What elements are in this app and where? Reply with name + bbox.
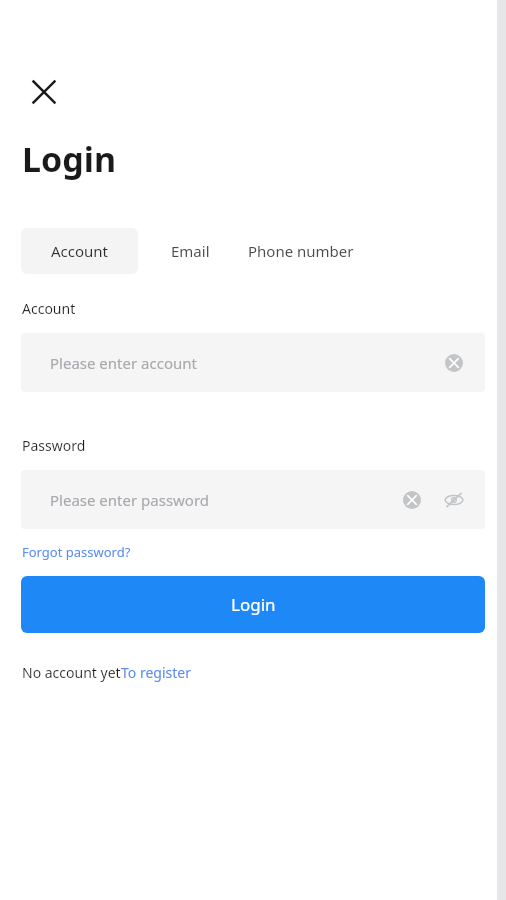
button[interactable]: Forgot password? xyxy=(22,543,131,561)
staticText: Please enter password xyxy=(50,490,210,510)
button[interactable]: Login xyxy=(21,576,485,633)
button[interactable]: Clear xyxy=(441,350,467,376)
staticText: Account xyxy=(22,299,76,318)
staticText: Email xyxy=(171,241,210,261)
button[interactable]: Please enter password xyxy=(21,470,485,529)
staticText: Password xyxy=(22,436,86,455)
button[interactable]: Please enter account xyxy=(21,333,485,392)
staticText: Phone number xyxy=(248,241,354,261)
button[interactable]: Email xyxy=(138,228,242,274)
staticText: Account xyxy=(51,241,109,261)
button[interactable]: To register xyxy=(121,663,191,682)
button[interactable]: Phone number xyxy=(242,228,360,274)
staticText: Login xyxy=(22,136,117,182)
button[interactable]: Close xyxy=(22,70,66,114)
button[interactable]: Clear xyxy=(399,487,425,513)
staticText: Please enter account xyxy=(50,353,197,373)
staticText: To register xyxy=(121,663,191,682)
staticText: Login xyxy=(231,593,276,616)
button[interactable]: Show password xyxy=(441,487,467,513)
staticText: No account yet xyxy=(22,663,121,682)
staticText: Forgot password? xyxy=(22,543,131,561)
button[interactable]: Account xyxy=(21,228,138,274)
